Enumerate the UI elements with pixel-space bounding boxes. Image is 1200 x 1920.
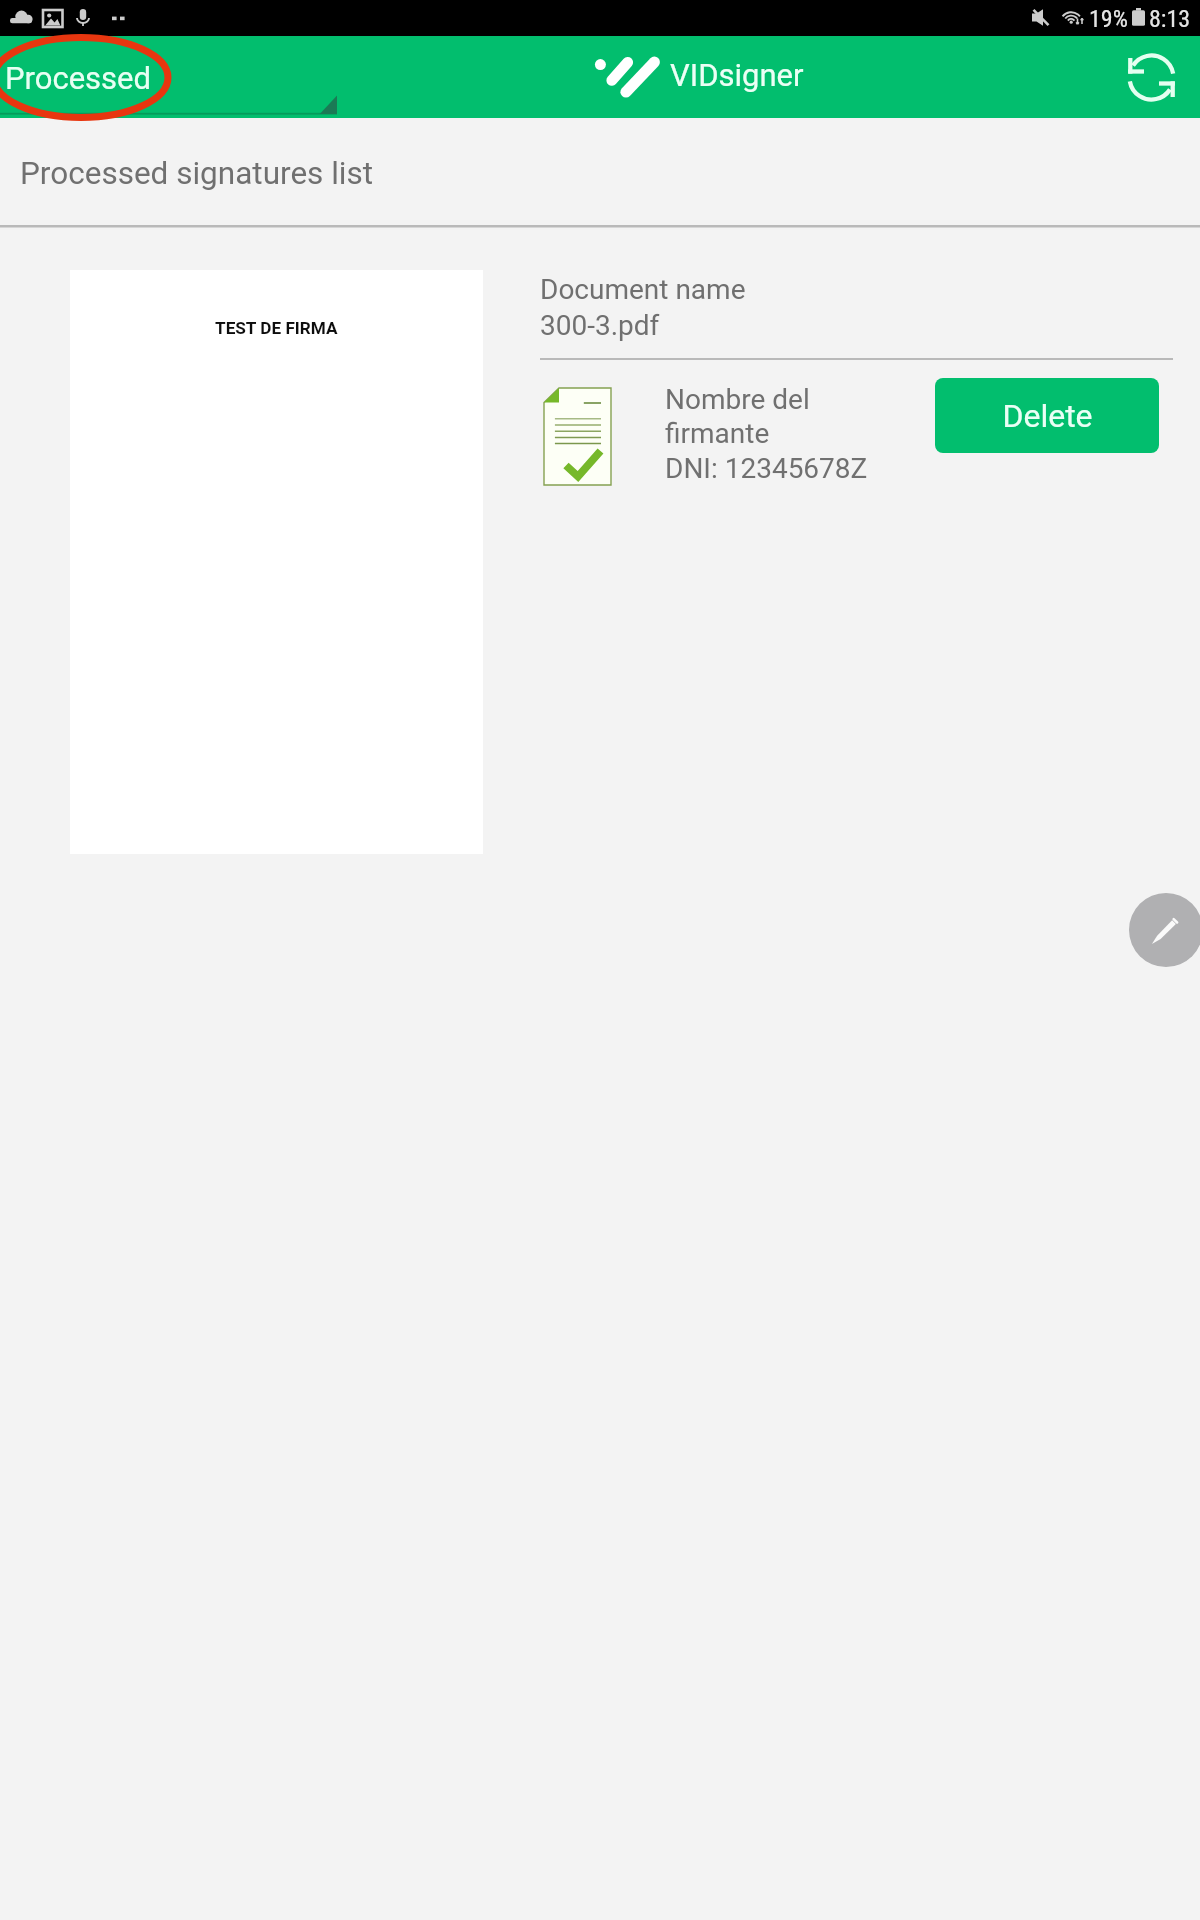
staticText: 300-3.pdf xyxy=(540,309,660,342)
staticText: Nombre del firmante xyxy=(665,383,890,450)
staticText: 8:13 xyxy=(1149,5,1191,33)
staticText: Processed xyxy=(5,60,152,96)
staticText: DNI: 12345678Z xyxy=(665,452,868,485)
staticText: TEST DE FIRMA xyxy=(215,318,338,338)
staticText: VIDsigner xyxy=(670,57,804,93)
staticText: 19% xyxy=(1089,5,1128,33)
staticText: Document name xyxy=(540,273,746,306)
button[interactable]: Refresh xyxy=(1115,41,1188,113)
button[interactable]: Delete xyxy=(935,378,1159,453)
staticText: Delete xyxy=(1002,397,1093,435)
button[interactable]: Document preview 300-3.pdf xyxy=(70,270,483,854)
staticText: Processed signatures list xyxy=(20,155,374,192)
button[interactable]: Processed xyxy=(0,36,337,118)
button[interactable]: Edit signature xyxy=(1129,893,1200,967)
